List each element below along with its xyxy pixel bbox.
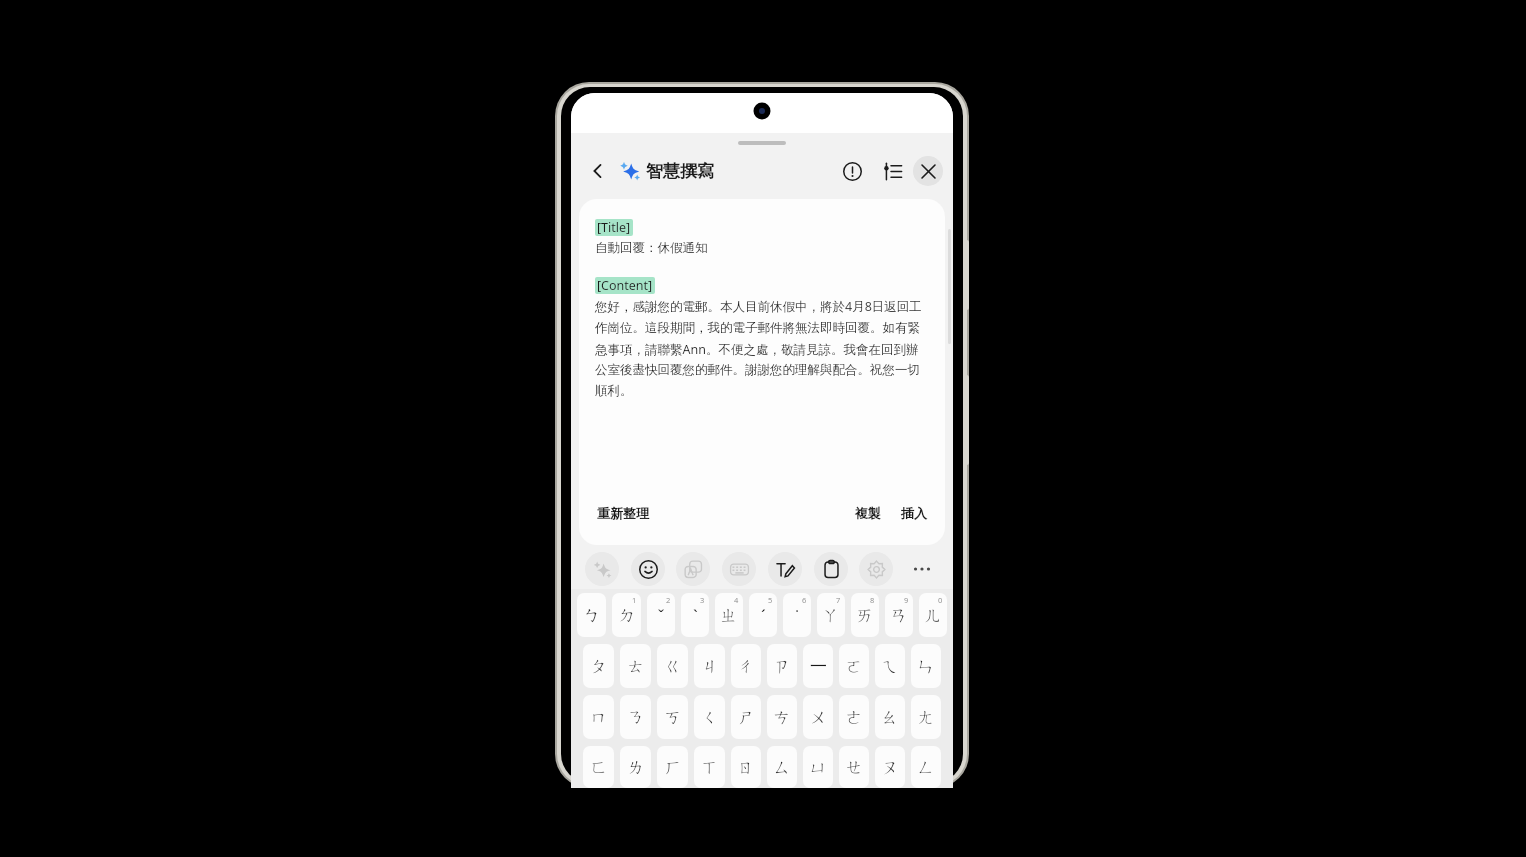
staticText: ㄈ <box>590 757 608 778</box>
staticText: 9 <box>904 595 909 605</box>
button[interactable]: ㄝ <box>839 746 869 788</box>
button[interactable]: 插入 <box>899 503 929 523</box>
button[interactable]: ㄉ <box>612 593 641 637</box>
staticText: 複製 <box>855 505 881 521</box>
staticText: 0 <box>938 595 943 605</box>
button[interactable]: Settings <box>859 552 893 586</box>
button[interactable]: Close <box>913 156 943 186</box>
staticText: ㄢ <box>890 605 908 626</box>
button[interactable]: 複製 <box>853 503 883 523</box>
button[interactable]: 一 <box>803 644 833 688</box>
button[interactable]: ㄛ <box>839 644 869 688</box>
button[interactable]: ㄓ <box>715 593 743 637</box>
button[interactable]: ㄨ <box>803 695 833 739</box>
button[interactable]: ㄟ <box>875 644 905 688</box>
button[interactable]: Clipboard <box>814 552 848 586</box>
staticText: ㄅ <box>583 605 601 626</box>
button[interactable]: Translate <box>676 552 710 586</box>
staticText: 插入 <box>901 505 927 521</box>
button[interactable]: ㄠ <box>875 695 905 739</box>
staticText: ㄚ <box>822 605 840 626</box>
button[interactable]: 重新整理 <box>595 503 651 523</box>
staticText: ㄕ <box>737 707 755 728</box>
button[interactable]: ˊ <box>749 593 777 637</box>
staticText: ㄞ <box>856 605 874 626</box>
staticText: 3 <box>700 595 705 605</box>
button[interactable]: ㄦ <box>919 593 947 637</box>
button[interactable]: ˋ <box>681 593 709 637</box>
button[interactable]: ㄕ <box>731 695 761 739</box>
button[interactable]: Handwriting <box>768 552 802 586</box>
button[interactable]: ㄗ <box>767 644 797 688</box>
button[interactable]: Information <box>835 154 869 188</box>
staticText: ㄡ <box>881 757 899 778</box>
button[interactable]: ㄈ <box>583 746 614 788</box>
staticText: ˊ <box>761 604 766 627</box>
staticText: 6 <box>802 595 807 605</box>
staticText: ˋ <box>693 604 698 627</box>
button[interactable]: ㄞ <box>851 593 879 637</box>
button[interactable]: ㄊ <box>620 644 651 688</box>
staticText: 8 <box>870 595 875 605</box>
staticText: ㄉ <box>618 605 636 626</box>
staticText: ㄩ <box>809 757 827 778</box>
staticText: ㄝ <box>845 757 863 778</box>
button[interactable]: ㄘ <box>767 695 797 739</box>
staticText: 您好，感謝您的電郵。本人目前休假中，將於4月8日返回工作崗位。這段期間，我的電子… <box>595 298 929 399</box>
button[interactable]: Keyboard layout <box>722 552 756 586</box>
staticText: 7 <box>836 595 841 605</box>
staticText: 自動回覆：休假通知 <box>595 240 708 256</box>
button[interactable]: Emoji <box>631 552 665 586</box>
staticText: ㄟ <box>881 656 899 677</box>
button[interactable]: More options <box>905 552 939 586</box>
staticText: ㄘ <box>773 707 791 728</box>
staticText: ㄤ <box>917 707 935 728</box>
button[interactable]: ㄢ <box>885 593 913 637</box>
button[interactable]: ㄐ <box>694 644 725 688</box>
staticText: ㄍ <box>664 656 682 677</box>
button[interactable]: ㄔ <box>731 644 761 688</box>
staticText: ㄏ <box>664 757 682 778</box>
button[interactable]: ㄣ <box>911 644 941 688</box>
button[interactable]: ㄜ <box>839 695 869 739</box>
button[interactable]: Back <box>581 154 615 188</box>
staticText: ㄇ <box>590 707 608 728</box>
button[interactable]: ㄡ <box>875 746 905 788</box>
button[interactable]: ㄏ <box>657 746 688 788</box>
staticText: ㄜ <box>845 707 863 728</box>
staticText: ㄊ <box>627 656 645 677</box>
button[interactable]: ㄙ <box>767 746 797 788</box>
button[interactable]: ㄑ <box>694 695 725 739</box>
button[interactable]: ˇ <box>647 593 675 637</box>
button[interactable]: ㄥ <box>911 746 941 788</box>
button[interactable]: ㄖ <box>731 746 761 788</box>
button[interactable]: ㄩ <box>803 746 833 788</box>
button[interactable]: ㄤ <box>911 695 941 739</box>
button[interactable]: ㄌ <box>620 746 651 788</box>
button[interactable]: ˙ <box>783 593 811 637</box>
staticText: ㄓ <box>720 605 738 626</box>
staticText: ㄗ <box>773 656 791 677</box>
staticText: 2 <box>666 595 671 605</box>
staticText: ㄐ <box>701 656 719 677</box>
button[interactable]: ㄆ <box>583 644 614 688</box>
button[interactable]: Writing assist <box>585 552 619 586</box>
staticText: ㄨ <box>809 707 827 728</box>
button[interactable]: ㄋ <box>620 695 651 739</box>
button[interactable]: ㄎ <box>657 695 688 739</box>
button[interactable]: Tune settings <box>875 154 909 188</box>
staticText: ㄥ <box>917 757 935 778</box>
button[interactable]: ㄒ <box>694 746 725 788</box>
staticText: 5 <box>768 595 773 605</box>
button[interactable]: ㄍ <box>657 644 688 688</box>
button[interactable]: ㄚ <box>817 593 845 637</box>
staticText: 智慧撰寫 <box>646 161 714 182</box>
staticText: 1 <box>632 595 637 605</box>
button[interactable]: ㄅ <box>577 593 606 637</box>
staticText: ㄔ <box>737 656 755 677</box>
button[interactable]: ㄇ <box>583 695 614 739</box>
staticText: ㄠ <box>881 707 899 728</box>
staticText: ㄦ <box>924 605 942 626</box>
staticText: ˙ <box>795 604 799 627</box>
staticText: ㄒ <box>701 757 719 778</box>
